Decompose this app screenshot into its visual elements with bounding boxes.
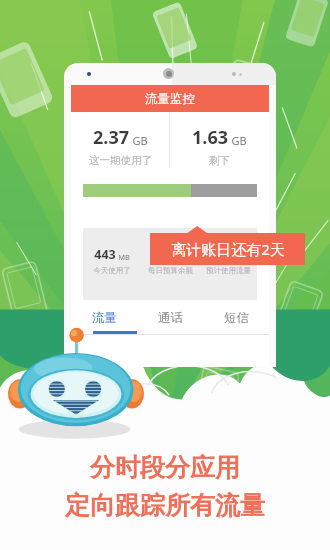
staticText: 通话 xyxy=(158,310,183,326)
staticText: 分时段分应用 xyxy=(90,452,240,483)
other: Robot mascot xyxy=(6,330,146,442)
button[interactable]: 流量 xyxy=(71,305,137,331)
staticText: 150 xyxy=(152,246,174,263)
staticText: 预计使用流量 xyxy=(206,266,251,275)
staticText: 流量监控 xyxy=(145,91,195,107)
staticText: 定向跟踪所有流量 xyxy=(65,490,265,521)
staticText: 443 xyxy=(94,246,116,263)
staticText: MB xyxy=(234,252,246,262)
staticText: MB xyxy=(176,252,188,262)
staticText: 每日预算余额 xyxy=(148,266,193,275)
button[interactable]: 离计账日还有2天 xyxy=(150,233,305,265)
staticText: 2.37 xyxy=(93,125,129,150)
staticText: MB xyxy=(118,252,130,262)
staticText: 这一期使用了 xyxy=(89,154,152,167)
staticText: 短信 xyxy=(224,310,249,326)
staticText: 今天使用了 xyxy=(93,266,131,275)
staticText: 流量 xyxy=(92,310,117,326)
button[interactable]: 短信 xyxy=(203,305,269,331)
staticText: 剩下 xyxy=(209,154,230,167)
staticText: GB xyxy=(231,133,247,148)
staticText: 离计账日还有2天 xyxy=(171,239,285,259)
button[interactable]: 流量监控 xyxy=(71,85,269,112)
staticText: 443 xyxy=(210,246,232,263)
button[interactable]: 通话 xyxy=(137,305,203,331)
staticText: 1.63 xyxy=(192,125,228,150)
staticText: GB xyxy=(132,133,148,148)
